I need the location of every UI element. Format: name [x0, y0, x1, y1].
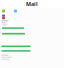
staticText: Mail: [26, 0, 38, 8]
